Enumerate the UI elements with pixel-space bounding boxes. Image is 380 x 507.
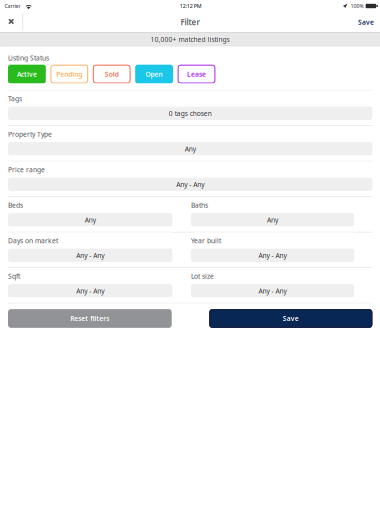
staticText: Any - Any — [76, 286, 104, 295]
staticText: Save — [283, 314, 299, 323]
staticText: Any - Any — [258, 251, 286, 260]
staticText: Any — [85, 215, 96, 224]
staticText: Reset filters — [70, 314, 109, 323]
button[interactable]: Any - Any — [8, 249, 172, 262]
staticText: Any - Any — [258, 286, 286, 295]
staticText: Active — [17, 70, 37, 79]
staticText: Save — [358, 18, 374, 26]
button[interactable]: Active — [8, 65, 46, 83]
button[interactable]: Lease — [178, 65, 215, 83]
staticText: Price range — [8, 165, 45, 174]
staticText: Beds — [8, 201, 23, 210]
staticText: 12:12 PM — [180, 2, 202, 10]
button[interactable]: Open — [135, 65, 173, 83]
staticText: Property Type — [8, 130, 52, 139]
staticText: 10,000+ matched listings — [150, 35, 229, 44]
button[interactable]: Save — [209, 309, 372, 328]
staticText: 0 tags chosen — [169, 109, 212, 118]
staticText: Sold — [105, 70, 119, 79]
staticText: Any — [267, 215, 278, 224]
staticText: Lot size — [191, 272, 214, 281]
button[interactable]: Any — [8, 213, 172, 226]
staticText: Any - Any — [76, 251, 104, 260]
staticText: Baths — [191, 201, 208, 210]
button[interactable]: Reset filters — [8, 309, 172, 328]
staticText: Any - Any — [176, 180, 204, 189]
staticText: Tags — [8, 94, 22, 103]
button[interactable]: Pending — [50, 65, 88, 83]
button[interactable]: Any - Any — [191, 284, 354, 297]
staticText: Year built — [191, 236, 221, 245]
staticText: Listing Status — [8, 53, 49, 62]
button[interactable]: Any - Any — [8, 284, 172, 297]
staticText: Sqft — [8, 272, 20, 281]
button[interactable]: Any — [8, 142, 372, 155]
staticText: Filter — [180, 17, 199, 27]
button[interactable]: Any — [191, 213, 354, 226]
button[interactable]: Any - Any — [8, 178, 372, 191]
button[interactable]: 0 tags chosen — [8, 107, 372, 120]
staticText: Lease — [187, 70, 206, 79]
button[interactable]: Sold — [93, 65, 131, 83]
staticText: Carrier — [4, 2, 20, 10]
button[interactable]: Close — [0, 12, 22, 32]
button[interactable]: Save — [352, 13, 380, 32]
staticText: Days on market — [8, 236, 58, 245]
staticText: Any — [185, 144, 196, 153]
button[interactable]: Any - Any — [191, 249, 354, 262]
staticText: 100% — [350, 2, 363, 10]
staticText: Pending — [56, 70, 82, 79]
staticText: Open — [146, 70, 163, 79]
